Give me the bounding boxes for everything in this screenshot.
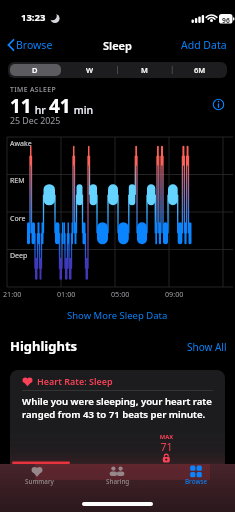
staticText: Sharing bbox=[106, 477, 130, 486]
staticText: min bbox=[71, 103, 94, 117]
staticText: TIME ASLEEP bbox=[10, 85, 56, 94]
staticText: 21:00 bbox=[3, 289, 22, 299]
button[interactable] bbox=[211, 97, 226, 112]
staticText: hr bbox=[32, 103, 49, 117]
staticText: Highlights bbox=[10, 337, 78, 355]
staticText: 09:00 bbox=[165, 289, 184, 299]
button[interactable]: 6M bbox=[172, 62, 227, 78]
staticText: REM bbox=[10, 176, 25, 186]
button[interactable]: D bbox=[8, 62, 62, 78]
staticText: Show All bbox=[187, 340, 227, 354]
staticText: Browse bbox=[16, 38, 53, 52]
button[interactable]: Show More Sleep Data bbox=[67, 309, 168, 322]
button[interactable]: Add Data bbox=[181, 38, 227, 52]
staticText: 11 bbox=[10, 93, 32, 119]
button[interactable]: M bbox=[117, 62, 172, 78]
button[interactable]: Heart Rate: Sleep bbox=[10, 370, 225, 512]
staticText: 13:23 bbox=[21, 11, 46, 24]
staticText: D bbox=[32, 65, 38, 75]
staticText: Core bbox=[10, 214, 26, 224]
staticText: Awake bbox=[10, 139, 32, 149]
staticText: Sleep bbox=[103, 38, 132, 53]
staticText: Heart Rate: Sleep bbox=[37, 375, 113, 387]
button[interactable]: Browse bbox=[157, 464, 235, 486]
button[interactable]: W bbox=[62, 62, 117, 78]
staticText: 01:00 bbox=[57, 289, 76, 299]
staticText: 25 Dec 2025 bbox=[10, 115, 61, 127]
button[interactable]: Browse bbox=[6, 36, 53, 54]
staticText: 6M bbox=[194, 65, 206, 75]
button[interactable]: Show All bbox=[187, 340, 227, 354]
staticText: Show More Sleep Data bbox=[67, 309, 168, 322]
staticText: Add Data bbox=[181, 38, 227, 52]
staticText: 71 bbox=[158, 440, 175, 454]
staticText: W bbox=[86, 65, 94, 75]
button[interactable]: Sharing bbox=[79, 464, 157, 486]
staticText: Browse bbox=[185, 477, 208, 486]
staticText: 05:00 bbox=[111, 289, 130, 299]
staticText: M bbox=[141, 65, 148, 75]
staticText: 41 bbox=[49, 93, 71, 119]
staticText: Summary bbox=[25, 477, 54, 486]
staticText: MAX bbox=[158, 433, 175, 441]
staticText: 96 bbox=[219, 16, 233, 25]
button[interactable]: Summary bbox=[0, 464, 79, 486]
staticText: Deep bbox=[10, 251, 28, 261]
staticText: While you were sleeping, your heart rate… bbox=[22, 395, 212, 421]
